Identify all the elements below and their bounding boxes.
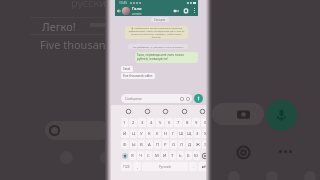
button[interactable]: ?123 <box>121 162 132 171</box>
staticText: Ф <box>123 142 127 148</box>
staticText: Ж <box>196 142 200 148</box>
button[interactable]: Keyboard tool 5 <box>199 108 205 114</box>
button[interactable]: Э <box>202 140 209 149</box>
staticText: Сообщение <box>125 97 142 101</box>
button[interactable]: Р <box>162 140 169 149</box>
button[interactable]: 7 <box>174 118 182 127</box>
button[interactable]: Ф <box>121 140 129 149</box>
staticText: Five thousand rubles <box>123 74 153 78</box>
staticText: Five thousan <box>40 37 106 49</box>
button[interactable]: Б <box>185 151 192 160</box>
staticText: 10:45 <box>119 1 128 5</box>
staticText: Ы <box>132 142 136 148</box>
staticText: С <box>147 153 150 159</box>
staticText: Сегодня <box>154 18 166 22</box>
button[interactable]: Н <box>162 129 169 138</box>
staticText: 6 <box>168 120 171 126</box>
button[interactable]: Ь <box>177 151 184 160</box>
button[interactable]: Video call <box>173 8 179 14</box>
button[interactable]: 4 <box>147 118 155 127</box>
button[interactable]: Keyboard tool 4 <box>181 108 187 114</box>
button[interactable]: More <box>279 150 292 153</box>
button[interactable]: 2 <box>129 118 137 127</box>
button[interactable]: Text input <box>45 121 110 140</box>
staticText: 0 <box>204 120 207 126</box>
button[interactable]: Settings <box>236 145 251 160</box>
button[interactable]: З <box>194 129 201 138</box>
button[interactable]: 5 <box>156 118 164 127</box>
button[interactable]: Keyboard tool 3 <box>162 108 168 114</box>
staticText: русский <box>71 0 113 9</box>
button[interactable]: Enter <box>198 162 209 171</box>
button[interactable]: Record voice message <box>194 94 203 103</box>
button[interactable]: More options <box>192 8 197 13</box>
button[interactable]: А <box>146 140 153 149</box>
staticText: 3 <box>141 120 144 126</box>
staticText: Щ <box>187 131 192 137</box>
button[interactable]: Щ <box>186 129 193 138</box>
button[interactable]: 🔒 Сообщения и звонки защищены сквозным ш… <box>125 26 188 39</box>
button[interactable]: 6 <box>165 118 173 127</box>
staticText: Д <box>188 142 192 148</box>
button[interactable]: М <box>153 151 160 160</box>
button[interactable]: Сообщение <box>121 94 192 103</box>
staticText: О <box>172 142 176 148</box>
button[interactable]: Keyboard tool 1 <box>125 108 131 114</box>
button[interactable]: Contact photo <box>122 7 130 15</box>
button[interactable]: Comma <box>133 162 141 171</box>
button[interactable]: 1 <box>121 118 128 127</box>
button[interactable]: П <box>154 140 161 149</box>
button[interactable]: Т <box>169 151 176 160</box>
button[interactable]: Е <box>154 129 161 138</box>
button[interactable]: Shift <box>121 151 128 160</box>
staticText: Е <box>156 131 159 137</box>
staticText: 7 <box>177 120 180 126</box>
button[interactable]: Вы добавили +7 999 888 77 66 в контакты <box>128 44 188 49</box>
button[interactable]: И <box>161 151 168 160</box>
button[interactable]: Backspace <box>201 151 209 160</box>
staticText: Я <box>131 153 134 159</box>
button[interactable]: К <box>146 129 153 138</box>
button[interactable]: Д <box>186 140 193 149</box>
button[interactable]: Ы <box>130 140 137 149</box>
staticText: Т <box>171 153 174 159</box>
button[interactable]: Я <box>129 151 136 160</box>
button[interactable]: Back <box>116 8 122 14</box>
staticText: В <box>140 142 143 148</box>
staticText: 2 <box>132 120 135 126</box>
button[interactable]: Five thousand rubles <box>121 73 155 79</box>
button[interactable]: У <box>138 129 145 138</box>
staticText: 5 <box>159 120 162 126</box>
button[interactable]: Л <box>178 140 185 149</box>
button[interactable]: 3 <box>138 118 146 127</box>
staticText: Русский <box>159 165 171 169</box>
staticText: 8 <box>186 120 189 126</box>
button[interactable]: 8 <box>183 118 191 127</box>
button[interactable]: Keyboard tool 2 <box>144 108 150 114</box>
staticText: 9 <box>195 120 198 126</box>
staticText: Ц <box>132 131 136 137</box>
staticText: Х <box>204 131 207 137</box>
button[interactable]: В <box>138 140 145 149</box>
button[interactable]: Ш <box>178 129 185 138</box>
button[interactable]: Галя! <box>121 66 133 72</box>
button[interactable]: Ч <box>137 151 144 160</box>
button[interactable]: 9 <box>192 118 200 127</box>
button[interactable]: Г <box>170 129 177 138</box>
button[interactable]: О <box>170 140 177 149</box>
button[interactable]: Галя, переведи мне пять тысяч рублей, по… <box>135 52 198 63</box>
button[interactable]: С <box>145 151 152 160</box>
button[interactable]: Message field <box>212 103 264 125</box>
button[interactable]: Ж <box>194 140 201 149</box>
button[interactable]: Ц <box>130 129 137 138</box>
button[interactable]: 0 <box>201 118 209 127</box>
button[interactable]: Call <box>183 8 189 14</box>
button[interactable]: Ю <box>193 151 200 160</box>
button[interactable]: Русский <box>142 162 188 171</box>
button[interactable]: Сегодня <box>151 17 169 22</box>
button[interactable]: Й <box>121 129 129 138</box>
staticText: М <box>155 153 159 159</box>
button[interactable]: Voice input <box>266 100 297 131</box>
button[interactable]: Х <box>202 129 209 138</box>
